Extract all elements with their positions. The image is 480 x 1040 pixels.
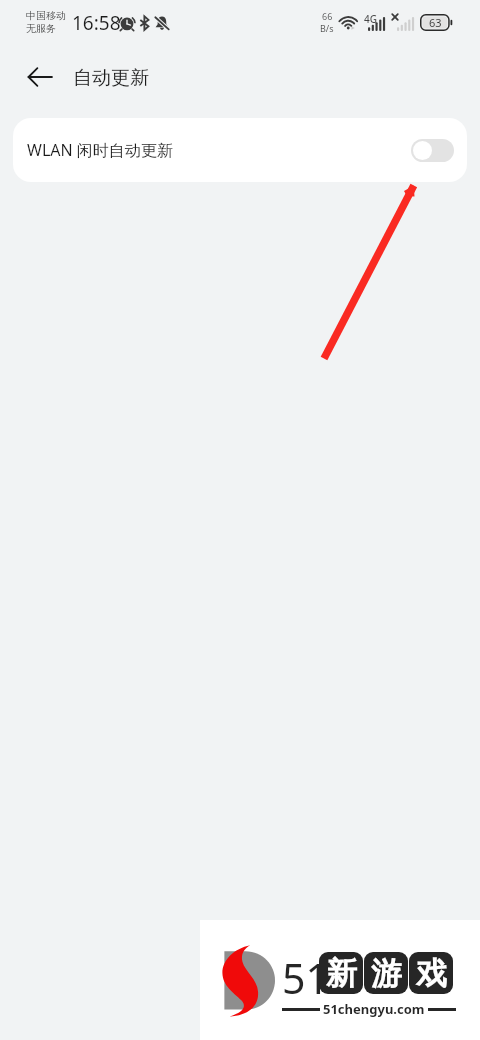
staticText: 无服务 — [26, 22, 56, 35]
staticText: 戏 — [416, 954, 447, 993]
button[interactable]: WLAN 闲时自动更新 — [13, 118, 467, 182]
staticText: B/s — [320, 22, 334, 34]
staticText: 51chengyu.com — [323, 1000, 425, 1018]
button[interactable]: WLAN 闲时自动更新开关 — [411, 139, 454, 162]
staticText: 游 — [371, 954, 402, 993]
staticText: 63 — [429, 15, 442, 30]
staticText: WLAN 闲时自动更新 — [27, 139, 173, 161]
staticText: 66 — [322, 10, 333, 22]
staticText: 中国移动 — [26, 9, 66, 22]
staticText: 51 — [282, 950, 329, 1006]
staticText: 新 — [326, 954, 357, 993]
staticText: 4G — [364, 12, 377, 26]
button[interactable]: 返回 — [18, 55, 62, 99]
staticText: 自动更新 — [73, 66, 149, 90]
staticText: 16:58 — [72, 10, 121, 36]
